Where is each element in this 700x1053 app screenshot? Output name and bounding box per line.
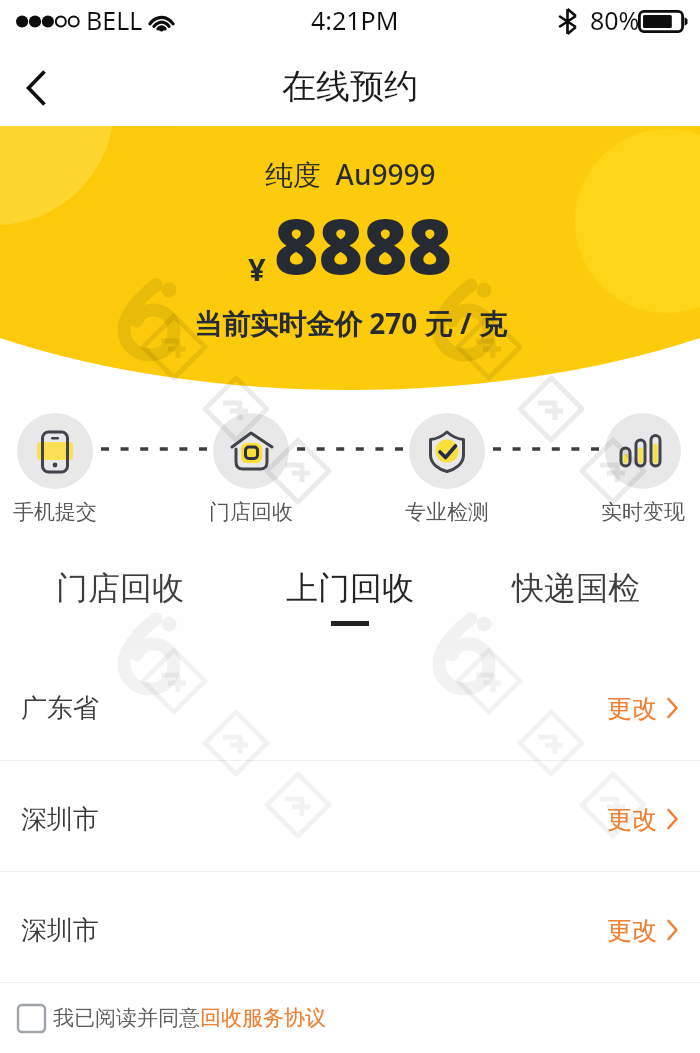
button[interactable]: 快递国检 bbox=[496, 548, 656, 650]
staticText: ¥ bbox=[248, 248, 266, 290]
staticText: 门店回收 bbox=[56, 568, 184, 608]
button[interactable]: 门店回收 bbox=[40, 548, 200, 650]
staticText: 广东省 bbox=[21, 692, 99, 725]
button[interactable]: Agree checkbox bbox=[18, 1005, 45, 1032]
button[interactable]: 上门回收 bbox=[270, 548, 430, 650]
staticText: 门店回收 bbox=[209, 499, 293, 525]
button[interactable]: 深圳市 bbox=[0, 872, 700, 982]
staticText: 4:21PM bbox=[311, 3, 399, 37]
button[interactable]: 门店回收 bbox=[195, 413, 307, 525]
staticText: 当前实时金价 270 元 / 克 bbox=[194, 304, 507, 342]
staticText: 手机提交 bbox=[13, 499, 97, 525]
staticText: 更改 bbox=[607, 915, 657, 946]
button[interactable]: 实时变现 bbox=[587, 413, 699, 525]
button[interactable]: 广东省 bbox=[0, 650, 700, 760]
staticText: 纯度 Au9999 bbox=[265, 155, 436, 193]
button[interactable]: 深圳市 bbox=[0, 761, 700, 871]
button[interactable]: 专业检测 bbox=[391, 413, 503, 525]
staticText: 快递国检 bbox=[512, 568, 640, 608]
staticText: 专业检测 bbox=[405, 499, 489, 525]
button[interactable]: 回收服务协议 bbox=[200, 1005, 326, 1031]
staticText: BELL bbox=[86, 3, 143, 37]
button[interactable]: 手机提交 bbox=[0, 413, 111, 525]
staticText: 上门回收 bbox=[286, 568, 414, 608]
staticText: 在线预约 bbox=[282, 65, 418, 108]
button[interactable]: Back bbox=[11, 63, 61, 113]
staticText: 实时变现 bbox=[601, 499, 685, 525]
staticText: 8888 bbox=[274, 193, 453, 297]
staticText: 80% bbox=[590, 3, 640, 37]
staticText: 更改 bbox=[607, 804, 657, 835]
staticText: 深圳市 bbox=[21, 914, 99, 947]
staticText: 我已阅读并同意 bbox=[53, 1005, 200, 1031]
staticText: 更改 bbox=[607, 693, 657, 724]
staticText: 深圳市 bbox=[21, 803, 99, 836]
